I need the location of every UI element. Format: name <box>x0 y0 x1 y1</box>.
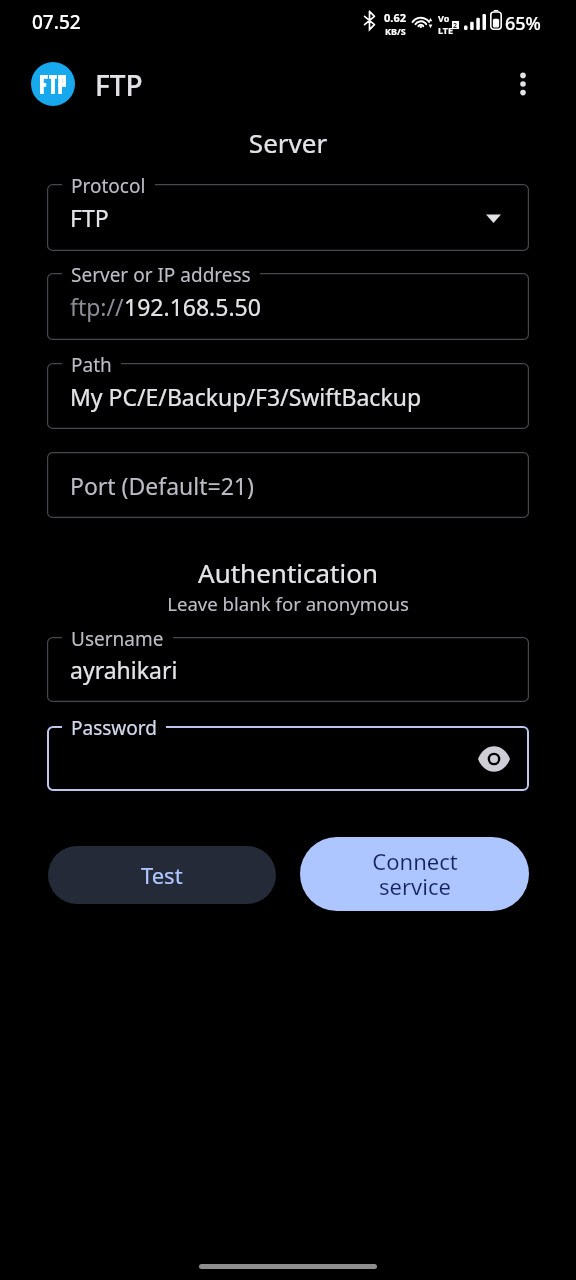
button[interactable]: Path <box>47 363 529 429</box>
staticText: Server <box>0 125 576 160</box>
staticText: Leave blank for anonymous <box>0 591 576 616</box>
staticText: FTP <box>70 202 109 233</box>
button[interactable]: More options <box>500 61 546 107</box>
staticText: Password <box>71 715 157 741</box>
button[interactable]: Show password <box>472 737 516 781</box>
button[interactable]: Server or IP address <box>47 273 529 340</box>
staticText: My PC/E/Backup/F3/SwiftBackup <box>70 381 422 412</box>
staticText: LTE <box>438 24 454 36</box>
staticText: Protocol <box>71 173 146 199</box>
button[interactable]: Protocol <box>47 184 529 251</box>
staticText: Connect service <box>372 846 458 902</box>
staticText: Username <box>71 626 164 652</box>
button[interactable]: Password <box>47 726 529 791</box>
staticText: 192.168.5.50 <box>124 291 261 322</box>
staticText: Path <box>71 352 112 378</box>
staticText: ftp:// <box>70 291 124 322</box>
staticText: 0.62 <box>384 10 406 25</box>
staticText: Vo <box>438 12 450 24</box>
button[interactable]: Port (Default=21) <box>47 452 529 518</box>
button[interactable]: Test <box>48 846 276 904</box>
staticText: FTP <box>95 66 143 104</box>
button[interactable]: Username <box>47 637 529 702</box>
staticText: 2 <box>453 21 458 29</box>
staticText: Test <box>141 860 183 890</box>
staticText: Port (Default=21) <box>70 470 254 501</box>
staticText: Server or IP address <box>71 262 251 288</box>
staticText: 65% <box>505 11 541 36</box>
button[interactable]: Connect service <box>300 837 529 911</box>
staticText: KB/S <box>385 25 406 37</box>
staticText: Authentication <box>0 555 576 590</box>
staticText: 07.52 <box>32 9 81 35</box>
button[interactable]: Select protocol <box>479 204 507 232</box>
button[interactable]: FTP app icon <box>31 62 75 106</box>
staticText: ayrahikari <box>70 654 178 685</box>
